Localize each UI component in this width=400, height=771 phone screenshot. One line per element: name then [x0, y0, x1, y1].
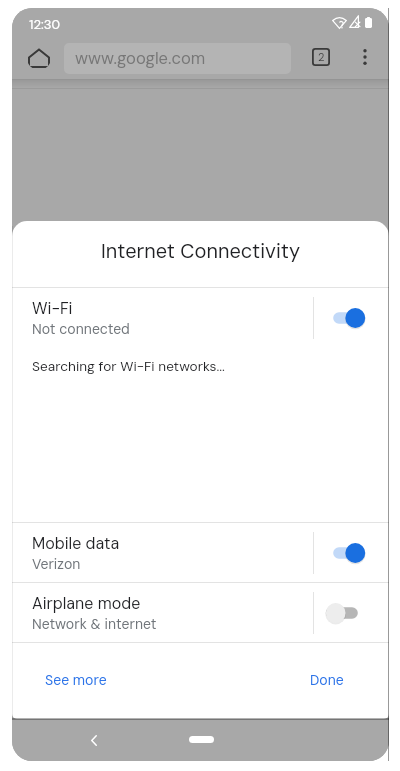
staticText: Internet Connectivity: [12, 238, 389, 264]
staticText: Not connected: [32, 320, 130, 338]
staticText: 12:30: [29, 16, 61, 33]
button[interactable]: Airplane mode: [12, 583, 389, 643]
button[interactable]: Back: [80, 726, 108, 754]
staticText: See more: [45, 671, 107, 689]
staticText: www.google.com: [75, 48, 206, 69]
button[interactable]: Home page: [27, 46, 51, 70]
button[interactable]: Wi-Fi: [12, 288, 389, 348]
staticText: Mobile data: [32, 533, 120, 554]
staticText: Airplane mode: [32, 593, 141, 614]
button[interactable]: Mobile data: [12, 523, 389, 583]
staticText: Searching for Wi-Fi networks...: [32, 358, 225, 376]
button[interactable]: See more: [37, 665, 115, 695]
staticText: Wi-Fi: [32, 298, 73, 319]
button[interactable]: Home: [189, 736, 214, 743]
button[interactable]: Open tabs, 2: [310, 46, 332, 68]
button[interactable]: www.google.com: [64, 43, 291, 74]
button[interactable]: Done: [302, 665, 352, 695]
staticText: Network & internet: [32, 615, 157, 633]
staticText: 2: [318, 50, 325, 64]
button[interactable]: More options: [351, 43, 379, 71]
staticText: Done: [310, 671, 344, 689]
staticText: Verizon: [32, 555, 81, 573]
